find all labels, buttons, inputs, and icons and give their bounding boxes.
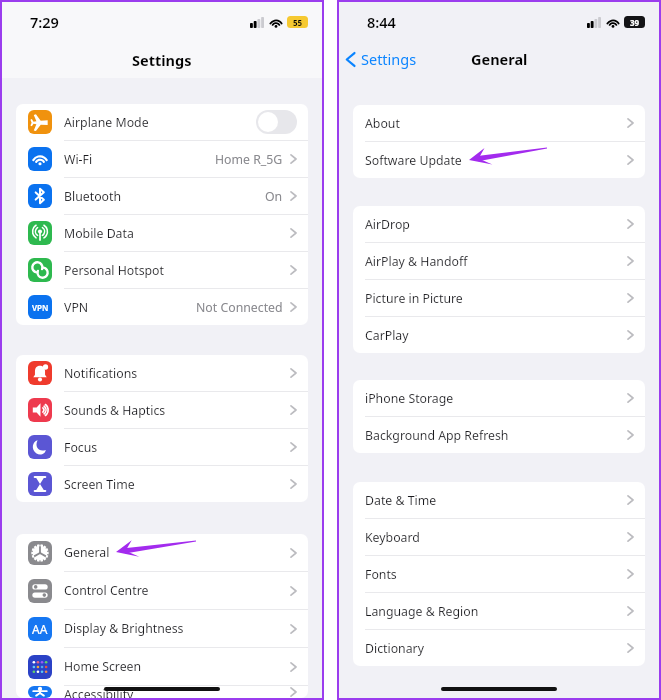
staticText: On: [265, 188, 283, 205]
button[interactable]: Airplane Mode: [16, 104, 308, 141]
button[interactable]: Language & Region: [353, 593, 645, 630]
staticText: General: [64, 544, 110, 561]
staticText: CarPlay: [365, 327, 409, 344]
staticText: Date & Time: [365, 492, 437, 509]
staticText: Bluetooth: [64, 188, 122, 205]
staticText: 7:29: [30, 12, 59, 32]
button[interactable]: About: [353, 105, 645, 142]
button[interactable]: Background App Refresh: [353, 417, 645, 453]
staticText: VPN: [64, 299, 89, 316]
staticText: Screen Time: [64, 476, 135, 493]
staticText: Software Update: [365, 152, 462, 169]
button[interactable]: Wi-Fi: [16, 141, 308, 178]
button[interactable]: Control Centre: [16, 572, 308, 610]
button[interactable]: CarPlay: [353, 317, 645, 353]
staticText: Language & Region: [365, 603, 479, 620]
staticText: Notifications: [64, 365, 138, 382]
staticText: Airplane Mode: [64, 114, 149, 131]
staticText: Keyboard: [365, 529, 420, 546]
staticText: Focus: [64, 439, 98, 456]
staticText: General: [471, 49, 528, 69]
button[interactable]: Screen Time: [16, 466, 308, 502]
staticText: AirPlay & Handoff: [365, 253, 468, 270]
staticText: 55: [293, 17, 303, 28]
button[interactable]: AA: [16, 610, 308, 648]
staticText: AirDrop: [365, 216, 410, 233]
staticText: Not Connected: [196, 299, 283, 316]
staticText: Dictionary: [365, 640, 424, 657]
staticText: Settings: [361, 49, 417, 69]
button[interactable]: Keyboard: [353, 519, 645, 556]
staticText: Personal Hotspot: [64, 262, 164, 279]
button[interactable]: Bluetooth: [16, 178, 308, 215]
staticText: Fonts: [365, 566, 397, 583]
button[interactable]: VPN: [16, 289, 308, 325]
staticText: Accessibility: [64, 686, 134, 698]
staticText: iPhone Storage: [365, 390, 454, 407]
staticText: Background App Refresh: [365, 427, 509, 444]
button[interactable]: Notifications: [16, 355, 308, 392]
button[interactable]: Software Update: [353, 142, 645, 178]
staticText: 39: [630, 17, 640, 28]
button[interactable]: AirDrop: [353, 206, 645, 243]
staticText: Picture in Picture: [365, 290, 463, 307]
button[interactable]: Focus: [16, 429, 308, 466]
staticText: AA: [32, 621, 48, 637]
button[interactable]: iPhone Storage: [353, 380, 645, 417]
staticText: Wi-Fi: [64, 151, 93, 168]
button[interactable]: Mobile Data: [16, 215, 308, 252]
button[interactable]: Accessibility: [16, 686, 308, 698]
button[interactable]: Dictionary: [353, 630, 645, 666]
staticText: Control Centre: [64, 582, 149, 599]
staticText: Mobile Data: [64, 225, 134, 242]
button[interactable]: Home Screen: [16, 648, 308, 686]
button[interactable]: Picture in Picture: [353, 280, 645, 317]
staticText: About: [365, 115, 400, 132]
button[interactable]: Date & Time: [353, 482, 645, 519]
button[interactable]: Settings: [345, 49, 417, 69]
button[interactable]: Personal Hotspot: [16, 252, 308, 289]
button[interactable]: Fonts: [353, 556, 645, 593]
button[interactable]: AirPlay & Handoff: [353, 243, 645, 280]
staticText: Home Screen: [64, 658, 142, 675]
button[interactable]: Sounds & Haptics: [16, 392, 308, 429]
staticText: Display & Brightness: [64, 620, 184, 637]
staticText: Home R_5G: [215, 151, 283, 168]
staticText: 8:44: [367, 12, 396, 32]
staticText: VPN: [32, 302, 49, 313]
staticText: Sounds & Haptics: [64, 402, 166, 419]
button[interactable]: General: [16, 534, 308, 572]
staticText: Settings: [132, 50, 192, 70]
